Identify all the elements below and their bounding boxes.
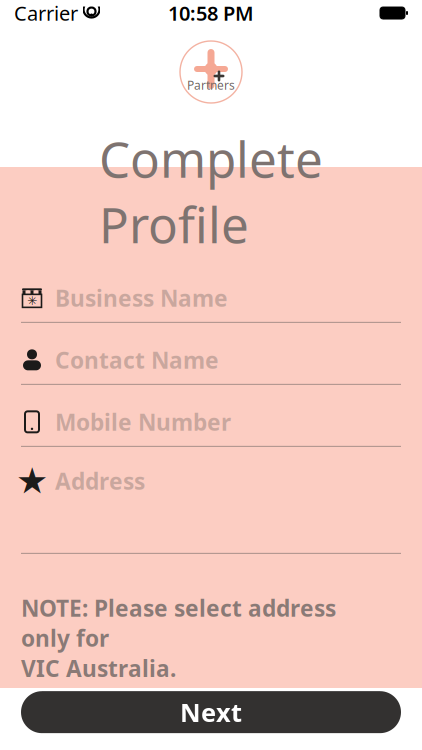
- staticText: Address: [55, 466, 145, 496]
- staticText: ★: [16, 460, 48, 501]
- staticText: Carrier: [14, 0, 78, 26]
- staticText: 10:58 PM: [168, 0, 254, 26]
- staticText: Mobile Number: [55, 407, 231, 437]
- staticText: NOTE: Please select address only for VIC…: [21, 593, 336, 683]
- button[interactable]: Contact Name: [21, 347, 401, 385]
- staticText: ✳: [27, 294, 37, 308]
- button[interactable]: ✳: [21, 285, 401, 323]
- staticText: Next: [180, 695, 242, 729]
- staticText: Partners: [187, 77, 235, 93]
- button[interactable]: Mobile Number: [21, 409, 401, 447]
- staticText: Contact Name: [55, 345, 219, 375]
- staticText: Business Name: [55, 283, 228, 313]
- button[interactable]: ★: [21, 468, 401, 554]
- staticText: Complete Profile: [99, 126, 323, 257]
- button[interactable]: Next: [21, 691, 401, 733]
